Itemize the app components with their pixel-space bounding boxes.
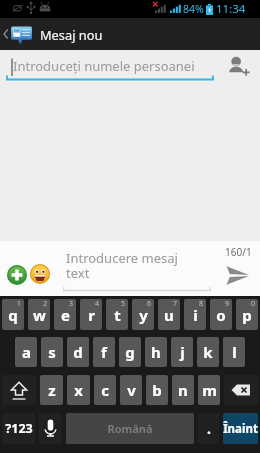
staticText: x [74,380,83,400]
staticText: h [151,342,161,362]
staticText: r [88,305,95,325]
staticText: s [48,342,56,362]
button[interactable]: i [184,299,206,330]
button[interactable]: b [146,375,168,405]
staticText: b [152,380,162,400]
button[interactable]: Shift [2,375,36,405]
staticText: 0 [251,299,256,309]
button[interactable]: Attach [7,265,27,285]
button[interactable]: m [198,375,220,405]
staticText: q [8,305,18,325]
button[interactable]: g [119,337,141,367]
button[interactable]: r [80,299,102,330]
staticText: Introducere mesaj text [66,249,178,282]
staticText: i [193,305,198,325]
button[interactable]: t [106,299,128,330]
staticText: n [178,380,188,400]
staticText: d [73,342,83,362]
staticText: g [125,342,135,362]
button[interactable]: c [94,375,116,405]
staticText: k [203,342,213,362]
button[interactable]: ?123 [2,413,35,444]
staticText: 2 [43,299,48,309]
staticText: Română [107,421,153,436]
staticText: 160/1 [225,245,252,259]
button[interactable]: q [2,299,24,330]
button[interactable]: u [158,299,180,330]
button[interactable]: Insert emoji [30,264,50,284]
staticText: f [101,342,107,362]
staticText: 84% [183,2,204,16]
button[interactable]: Backspace [224,375,258,405]
staticText: Înainte [223,421,258,437]
staticText: a [22,342,31,362]
staticText: j [180,342,185,362]
staticText: 3 [69,299,74,309]
button[interactable]: Introducere mesaj text [57,247,211,292]
button[interactable]: z [40,375,63,405]
staticText: 11:34 [216,1,246,17]
staticText: y [139,305,148,325]
staticText: 9 [225,299,230,309]
staticText: z [48,380,56,400]
button[interactable]: j [171,337,193,367]
staticText: o [216,305,226,325]
staticText: Mesaj nou [40,26,103,43]
staticText: 6 [147,299,152,309]
staticText: c [101,380,109,400]
button[interactable]: . [198,413,219,444]
button[interactable]: d [67,337,89,367]
button[interactable]: l [223,337,245,367]
staticText: l [232,342,237,362]
staticText: 4 [95,299,100,309]
button[interactable]: f [93,337,115,367]
button[interactable]: Introduceți numele persoanei [6,50,214,84]
button[interactable]: v [120,375,142,405]
button[interactable]: Add recipient [228,54,252,78]
staticText: w [33,305,46,325]
button[interactable]: Voice input [39,413,62,444]
button[interactable]: o [210,299,232,330]
staticText: Introduceți numele persoanei [13,57,195,75]
staticText: 1 [17,299,22,309]
button[interactable]: p [236,299,258,330]
button[interactable]: e [54,299,76,330]
staticText: 5 [121,299,126,309]
staticText: 8 [199,299,204,309]
staticText: e [61,305,70,325]
button[interactable]: x [67,375,90,405]
staticText: m [202,380,217,400]
button[interactable]: h [145,337,167,367]
button[interactable]: Mesaj nou [0,18,260,50]
button[interactable]: Send [224,264,250,287]
staticText: 7 [173,299,178,309]
button[interactable]: Înainte [223,413,258,444]
button[interactable]: k [197,337,219,367]
staticText: v [127,380,136,400]
staticText: p [242,305,252,325]
staticText: ?123 [5,420,33,437]
button[interactable]: w [28,299,50,330]
staticText: t [114,305,121,325]
staticText: . [207,419,211,438]
staticText: u [164,305,174,325]
button[interactable]: Română [66,413,194,444]
button[interactable]: y [132,299,154,330]
button[interactable]: s [41,337,63,367]
button[interactable]: a [15,337,37,367]
button[interactable]: n [172,375,194,405]
